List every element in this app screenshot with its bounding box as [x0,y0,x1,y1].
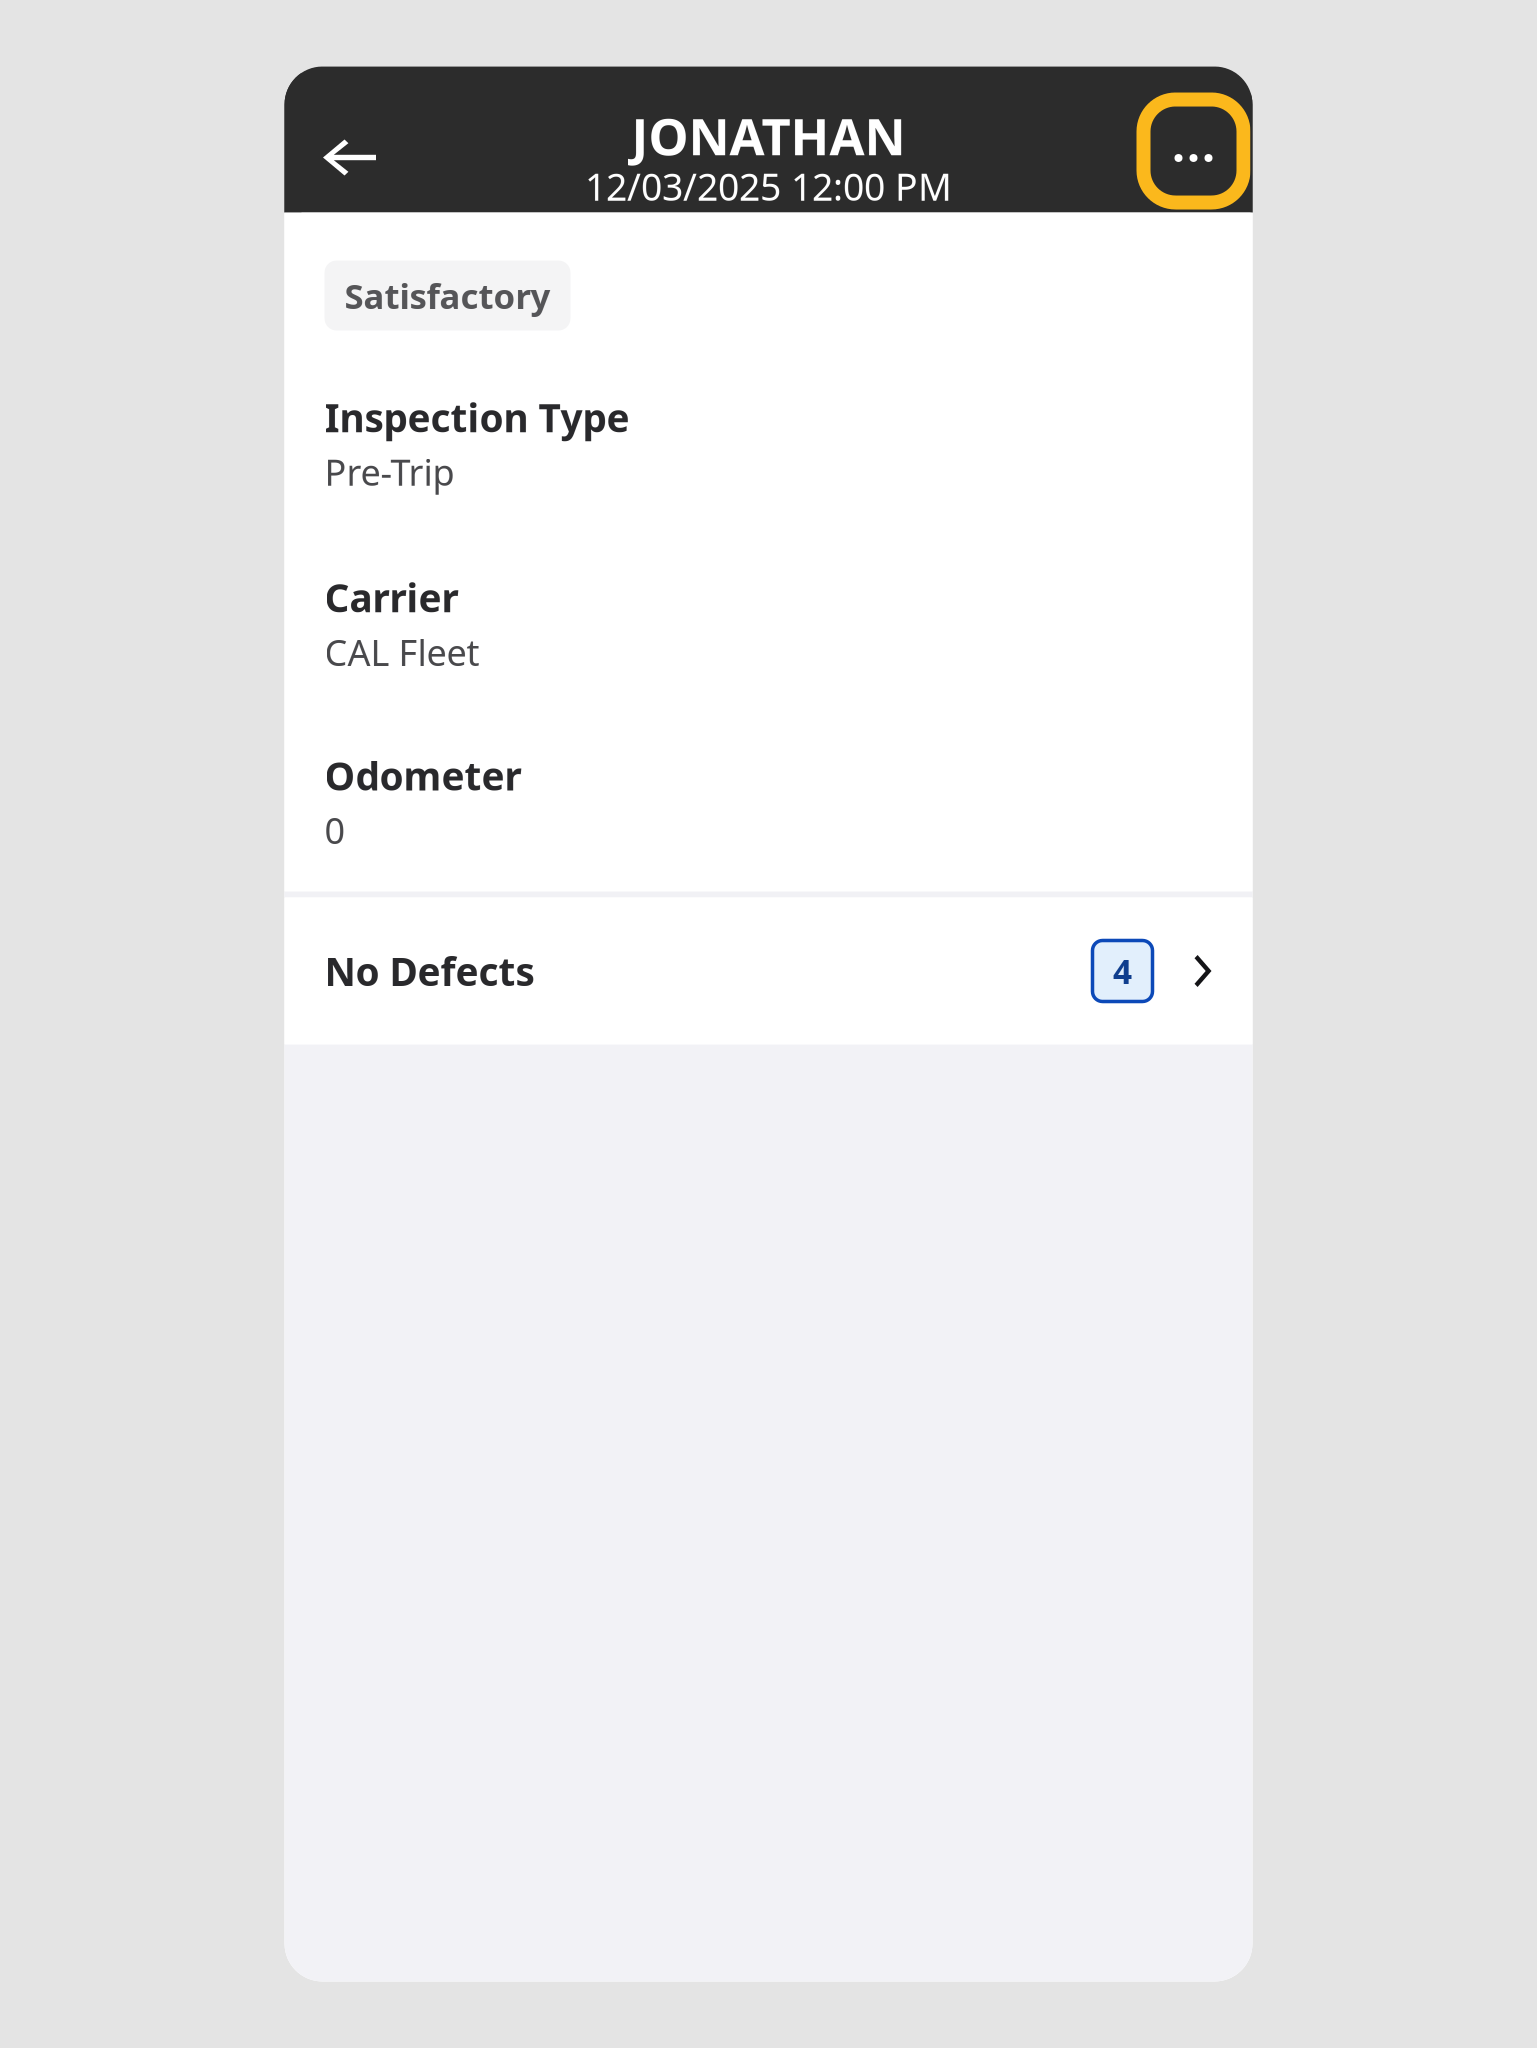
staticText: JONATHAN [631,102,905,169]
button[interactable]: No Defects [284,897,1252,1044]
staticText: 12/03/2025 12:00 PM [585,161,952,211]
staticText: CAL Fleet [324,628,479,676]
staticText: No Defects [324,945,534,997]
staticText: 0 [324,806,345,854]
staticText: Inspection Type [324,391,629,443]
staticText: 4 [1113,949,1132,993]
staticText: Odometer [324,750,521,801]
staticText: Pre-Trip [324,448,454,496]
button[interactable]: More options [1136,69,1250,209]
staticText: Satisfactory [344,272,550,318]
button[interactable]: Back [301,76,397,202]
staticText: Carrier [324,572,458,623]
